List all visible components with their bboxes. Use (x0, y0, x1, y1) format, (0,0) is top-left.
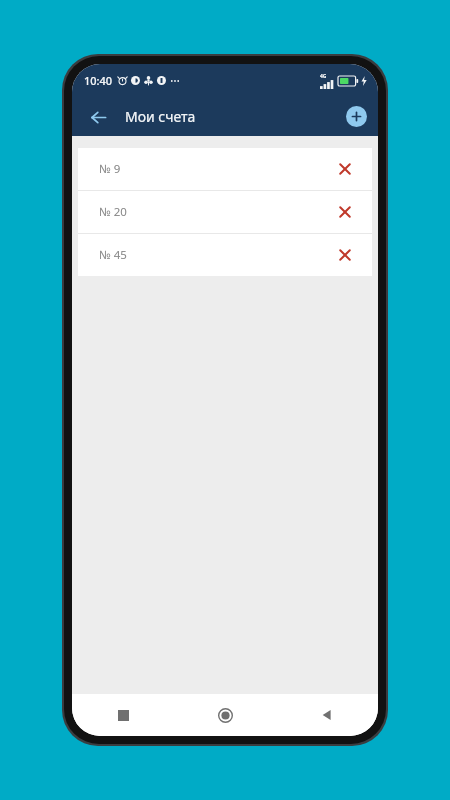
button[interactable]: Home (174, 694, 276, 736)
staticText: № 9 (99, 161, 121, 177)
button[interactable]: № 20 (78, 191, 372, 233)
button[interactable]: Back (276, 694, 378, 736)
staticText: № 20 (99, 204, 127, 220)
button[interactable]: Delete № 9 (332, 156, 358, 182)
button[interactable]: № 45 (78, 234, 372, 276)
button[interactable]: Add account (346, 106, 367, 127)
staticText: 10:40 (84, 73, 113, 88)
button[interactable]: Delete № 45 (332, 242, 358, 268)
staticText: № 45 (99, 247, 127, 263)
staticText: 4G (320, 73, 327, 80)
button[interactable]: Recent apps (72, 694, 174, 736)
button[interactable]: № 9 (78, 148, 372, 190)
button[interactable]: Delete № 20 (332, 199, 358, 225)
button[interactable]: Back (81, 100, 115, 134)
staticText: Мои счета (125, 107, 196, 126)
